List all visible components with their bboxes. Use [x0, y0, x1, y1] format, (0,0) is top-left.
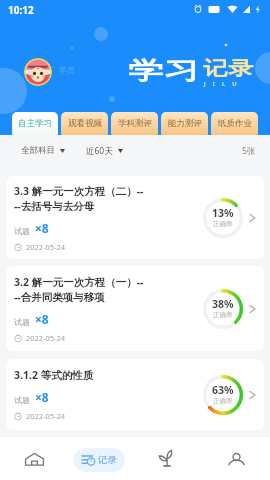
staticText: 13%: [212, 206, 234, 220]
staticText: 2022-05-24: [26, 242, 66, 252]
staticText: 3.2 解一元一次方程（一）-- --合并同类项与移项: [14, 275, 144, 304]
staticText: ×8: [35, 389, 49, 405]
staticText: 学科测评: [118, 118, 152, 129]
button[interactable]: Open details: [245, 211, 259, 225]
button[interactable]: Open details: [245, 388, 259, 402]
button[interactable]: 能力测评: [161, 112, 208, 135]
button[interactable]: 自主学习: [12, 112, 58, 135]
button[interactable]: 纸质作业: [211, 112, 258, 135]
staticText: 2022-05-24: [26, 411, 66, 421]
staticText: 正确率: [213, 311, 233, 319]
staticText: ×8: [35, 220, 49, 236]
staticText: 自主学习: [18, 118, 52, 129]
staticText: 试题: [14, 317, 30, 327]
staticText: 近60天: [86, 145, 113, 157]
staticText: 试题: [14, 226, 30, 236]
button[interactable]: 全部科目: [21, 145, 65, 156]
staticText: 3.1.2 等式的性质: [14, 368, 94, 382]
staticText: 记录: [203, 57, 254, 81]
staticText: 3.3 解一元一次方程（二）-- --去括号与去分母: [14, 184, 144, 213]
staticText: 2022-05-24: [26, 333, 66, 343]
staticText: 学员: [59, 65, 75, 75]
staticText: 5张: [242, 145, 256, 157]
button[interactable]: User avatar: [24, 58, 52, 86]
staticText: 正确率: [213, 397, 233, 405]
button[interactable]: Open details: [245, 302, 259, 316]
button[interactable]: 观看视频: [61, 112, 108, 135]
staticText: 正确率: [213, 220, 233, 228]
button[interactable]: 3.1.2 等式的性质: [6, 359, 264, 430]
staticText: 38%: [212, 297, 234, 311]
staticText: 记录: [98, 454, 117, 466]
button[interactable]: Home: [8, 441, 60, 477]
button[interactable]: 近60天: [86, 145, 123, 157]
staticText: 观看视频: [68, 118, 102, 129]
staticText: 学习: [128, 56, 199, 86]
staticText: 能力测评: [168, 118, 202, 129]
button[interactable]: 3.2 解一元一次方程（一）-- --合并同类项与移项: [6, 266, 264, 351]
staticText: JILU: [204, 80, 244, 88]
staticText: 纸质作业: [218, 118, 252, 129]
staticText: 全部科目: [21, 145, 55, 156]
staticText: 63%: [212, 383, 234, 397]
staticText: ×8: [35, 311, 49, 327]
staticText: 10:12: [8, 3, 34, 17]
button[interactable]: Profile: [210, 442, 262, 478]
staticText: 试题: [14, 395, 30, 405]
button[interactable]: 学科测评: [111, 112, 158, 135]
button[interactable]: 3.3 解一元一次方程（二）-- --去括号与去分母: [6, 176, 264, 259]
button[interactable]: 记录: [74, 448, 125, 472]
button[interactable]: Growth: [141, 442, 193, 478]
